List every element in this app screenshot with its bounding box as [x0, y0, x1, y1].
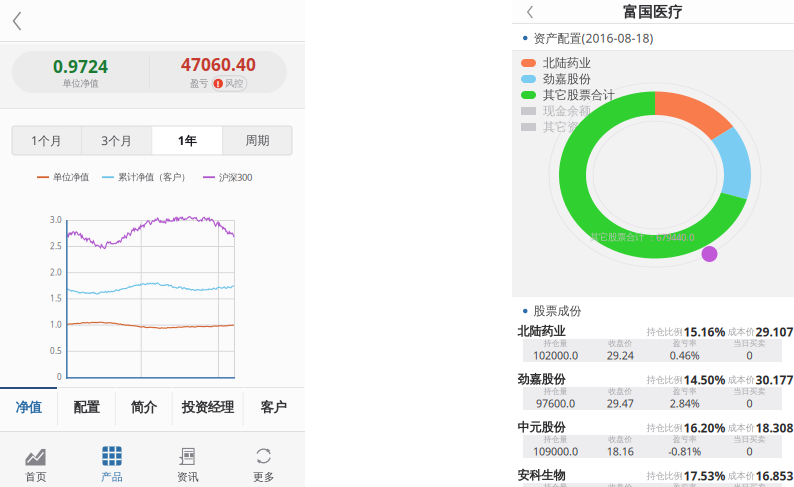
staticText: 收盘价	[608, 434, 632, 444]
staticText: 持仓比例	[646, 374, 682, 386]
button[interactable]: 资讯	[150, 437, 226, 487]
button[interactable]: 中元股份	[517, 418, 787, 466]
staticText: 2.84%	[670, 396, 700, 410]
staticText: 更多	[253, 470, 275, 483]
staticText: 47060.40	[181, 53, 256, 76]
staticText: 18.16	[607, 444, 634, 458]
staticText: 1.0	[50, 319, 62, 330]
staticText: 97600.0	[536, 396, 575, 410]
staticText: 18.308	[755, 420, 793, 436]
staticText: !	[217, 77, 220, 90]
staticText: 当日买卖	[734, 482, 766, 487]
button[interactable]: Back	[0, 1, 34, 41]
staticText: 17.53%	[683, 468, 725, 484]
staticText: 劲嘉股份	[517, 372, 565, 387]
staticText: 累计净值（客户）	[118, 171, 190, 183]
staticText: 成本价	[727, 422, 754, 434]
staticText: 持仓量	[543, 386, 567, 396]
staticText: 14.50%	[683, 372, 725, 388]
staticText: 持仓比例	[646, 326, 682, 338]
staticText: 成本价	[727, 326, 754, 338]
staticText: 1个月	[31, 132, 62, 148]
staticText: 风控	[225, 78, 243, 89]
staticText: 单位净值	[63, 78, 99, 89]
staticText: 投资经理	[182, 399, 234, 415]
staticText: 29.24	[607, 348, 634, 362]
staticText: 持仓量	[543, 482, 567, 487]
button[interactable]: 投资经理	[173, 387, 243, 431]
staticText: 109000.0	[533, 444, 578, 458]
staticText: 当日买卖	[734, 386, 766, 396]
staticText: 北陆药业	[517, 324, 565, 339]
staticText: 29.107	[755, 324, 793, 340]
staticText: 中元股份	[517, 420, 565, 435]
staticText: 股票成份	[533, 304, 581, 318]
staticText: 0.9724	[53, 55, 108, 78]
staticText: 收盘价	[608, 482, 632, 487]
staticText: 盈亏率	[673, 338, 697, 348]
staticText: 30.177	[755, 372, 793, 388]
staticText: 0.46%	[670, 348, 700, 362]
staticText: 净值	[15, 399, 41, 415]
staticText: 客户	[261, 399, 287, 415]
staticText: 持仓量	[543, 434, 567, 444]
button[interactable]: 1个月	[12, 126, 81, 155]
staticText: 简介	[131, 399, 157, 415]
button[interactable]: 安科生物	[517, 466, 787, 487]
staticText: 0.5	[50, 345, 62, 356]
staticText: 3.0	[50, 215, 62, 225]
staticText: ：679440.0	[647, 231, 694, 243]
staticText: 持仓比例	[646, 422, 682, 434]
button[interactable]: 配置	[58, 387, 115, 431]
staticText: 资产配置(2016-08-18)	[533, 30, 653, 46]
staticText: 2.0	[50, 267, 62, 278]
staticText: 成本价	[727, 470, 754, 482]
staticText: 配置	[73, 399, 99, 415]
staticText: 持仓比例	[646, 470, 682, 482]
button[interactable]: 1年	[152, 126, 222, 155]
staticText: 盈亏率	[673, 482, 697, 487]
staticText: 安科生物	[517, 468, 565, 483]
staticText: 15.16%	[683, 324, 725, 340]
staticText: 其它股票合计	[543, 88, 615, 102]
staticText: 收盘价	[608, 338, 632, 348]
button[interactable]: 劲嘉股份	[517, 370, 787, 418]
button[interactable]: 净值	[0, 387, 57, 431]
staticText: 单位净值	[53, 171, 89, 183]
button[interactable]: 客户	[244, 387, 304, 431]
staticText: -0.81%	[668, 444, 701, 458]
button[interactable]: 简介	[116, 387, 172, 431]
button[interactable]: 首页	[0, 437, 74, 487]
button[interactable]: 产品	[74, 437, 150, 487]
staticText: 收盘价	[608, 386, 632, 396]
staticText: 现金余额	[543, 104, 591, 118]
button[interactable]: 3个月	[82, 126, 152, 155]
staticText: 盈亏率	[673, 386, 697, 396]
staticText: 0	[57, 372, 62, 382]
staticText: 29.47	[607, 396, 634, 410]
staticText: 3个月	[101, 132, 132, 148]
staticText: 劲嘉股份	[543, 72, 591, 86]
staticText: 102000.0	[533, 348, 578, 362]
staticText: 持仓量	[543, 338, 567, 348]
staticText: 盈亏率	[673, 434, 697, 444]
staticText: 成本价	[727, 374, 754, 386]
staticText: 当日买卖	[734, 434, 766, 444]
staticText: 16.853	[755, 468, 793, 484]
button[interactable]: Back	[512, 0, 548, 24]
staticText: 产品	[101, 470, 123, 483]
button[interactable]: 周期	[223, 126, 292, 155]
staticText: 周期	[246, 133, 270, 148]
staticText: 0	[747, 348, 753, 362]
button[interactable]: 更多	[226, 437, 302, 487]
staticText: 当日买卖	[734, 338, 766, 348]
staticText: 1.5	[50, 293, 62, 304]
staticText: 资讯	[177, 470, 199, 483]
staticText: 2.5	[50, 241, 62, 251]
staticText: 首页	[25, 470, 47, 483]
button[interactable]: 北陆药业	[517, 322, 787, 370]
staticText: 富国医疗	[623, 3, 683, 21]
staticText: 0	[747, 396, 753, 410]
staticText: 1年	[178, 132, 197, 148]
staticText: 其它股票合计	[590, 231, 644, 243]
